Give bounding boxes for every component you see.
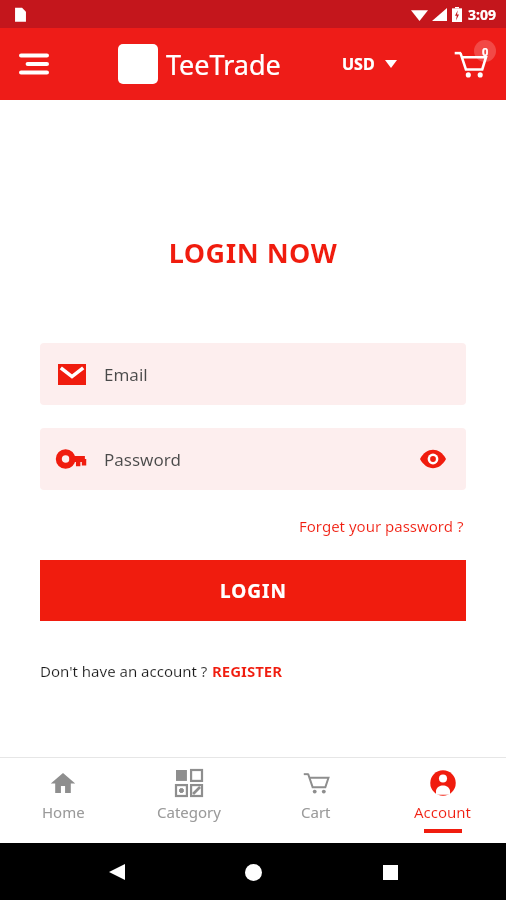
staticText: TeeTrade bbox=[166, 46, 281, 83]
button[interactable]: Cart bbox=[252, 758, 379, 843]
staticText: Category bbox=[157, 802, 221, 822]
button[interactable]: TeeTrade bbox=[118, 44, 281, 84]
button[interactable]: Home bbox=[233, 852, 273, 892]
button[interactable]: Home bbox=[0, 758, 126, 843]
button[interactable]: Show password bbox=[418, 444, 448, 474]
button[interactable]: Back bbox=[97, 852, 137, 892]
button[interactable]: LOGIN bbox=[40, 560, 466, 621]
button[interactable]: Email bbox=[40, 343, 466, 405]
button[interactable]: Category bbox=[126, 758, 252, 843]
button[interactable]: Menu bbox=[8, 38, 60, 90]
button[interactable]: REGISTER bbox=[212, 661, 283, 681]
button[interactable]: Cart bbox=[444, 38, 496, 90]
staticText: Account bbox=[414, 802, 472, 822]
staticText: Cart bbox=[301, 802, 331, 822]
staticText: USD bbox=[342, 53, 375, 75]
staticText: 3:09 bbox=[468, 5, 496, 24]
button[interactable]: Recent apps bbox=[370, 852, 410, 892]
staticText: 0 bbox=[482, 44, 489, 59]
staticText: Email bbox=[104, 363, 148, 386]
button[interactable]: USD bbox=[340, 45, 399, 83]
staticText: LOGIN bbox=[220, 578, 287, 604]
button[interactable]: Account bbox=[379, 758, 506, 843]
button[interactable]: Forget your password ? bbox=[295, 512, 468, 540]
button[interactable]: Password bbox=[40, 428, 466, 490]
staticText: LOGIN NOW bbox=[0, 234, 506, 271]
staticText: Password bbox=[104, 448, 181, 471]
staticText: Don't have an account ? bbox=[40, 661, 212, 681]
staticText: Home bbox=[42, 802, 85, 822]
